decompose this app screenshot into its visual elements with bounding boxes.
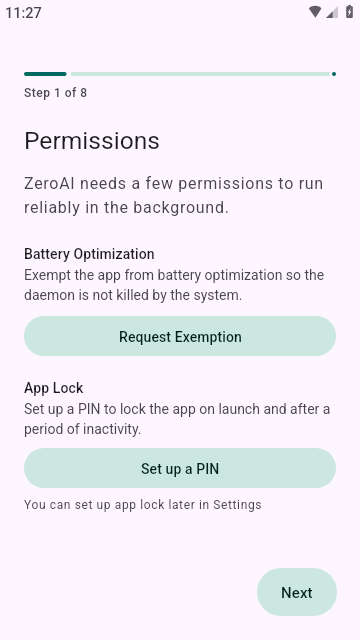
staticText: App Lock [24, 377, 84, 397]
staticText: Permissions [24, 123, 160, 156]
staticText: 11:27 [5, 4, 42, 22]
staticText: Next [281, 582, 313, 602]
other: Wi-Fi [308, 5, 322, 18]
staticText: Exempt the app from battery optimization… [24, 264, 336, 304]
staticText: Set up a PIN to lock the app on launch a… [24, 398, 336, 438]
staticText: You can set up app lock later in Setting… [24, 496, 263, 512]
staticText: Set up a PIN [141, 458, 220, 478]
button[interactable]: Request Exemption [24, 316, 336, 356]
staticText: Request Exemption [119, 326, 242, 346]
button[interactable]: Next [257, 568, 337, 616]
other: Battery charging [346, 5, 353, 18]
button[interactable]: Set up a PIN [24, 448, 336, 488]
other: Mobile signal [326, 6, 338, 18]
staticText: Step 1 of 8 [24, 84, 88, 100]
staticText: ZeroAI needs a few permissions to run re… [24, 170, 336, 218]
staticText: Battery Optimization [24, 243, 155, 263]
